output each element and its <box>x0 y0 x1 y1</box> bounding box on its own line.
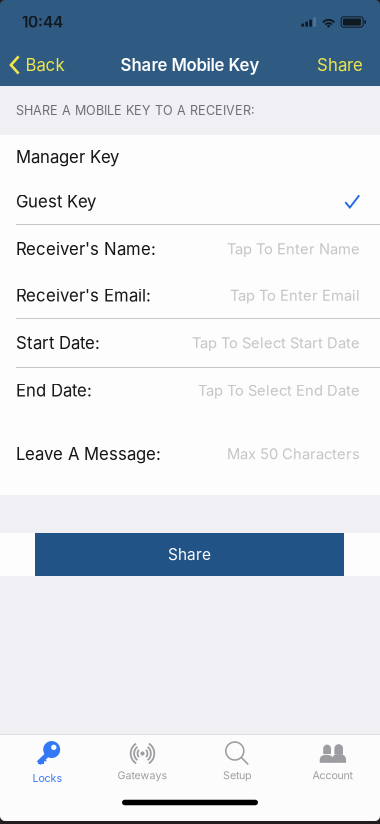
button[interactable]: Locks <box>0 735 95 784</box>
staticText: Manager Key <box>16 147 119 167</box>
button[interactable]: Manager Key <box>0 135 380 179</box>
staticText: Back <box>25 55 64 75</box>
staticText: Tap To Enter Name <box>227 240 360 258</box>
staticText: Share <box>168 545 211 564</box>
staticText: Locks <box>32 771 62 784</box>
staticText: Gateways <box>117 769 167 782</box>
staticText: Receiver's Name: <box>16 239 156 259</box>
staticText: End Date: <box>16 380 92 401</box>
button[interactable]: Guest Key <box>0 179 380 224</box>
button[interactable]: Receiver's Email: <box>0 273 380 318</box>
button[interactable]: Back <box>0 44 74 86</box>
button[interactable]: Share <box>0 533 380 576</box>
staticText: Tap To Select Start Date <box>192 334 360 352</box>
staticText: Start Date: <box>16 333 100 353</box>
staticText: 10:44 <box>22 13 63 31</box>
staticText: Receiver's Email: <box>16 285 151 306</box>
button[interactable]: Account <box>285 735 380 784</box>
button[interactable]: Share <box>300 44 380 86</box>
staticText: Share Mobile Key <box>120 55 259 75</box>
button[interactable]: Receiver's Name: <box>0 225 380 273</box>
button[interactable]: Leave A Message: <box>0 413 380 495</box>
button[interactable]: Start Date: <box>0 319 380 367</box>
staticText: Tap To Select End Date <box>198 382 360 399</box>
staticText: Share <box>317 55 363 75</box>
staticText: Setup <box>223 769 252 782</box>
staticText: Tap To Enter Email <box>230 287 360 304</box>
button[interactable]: Setup <box>190 735 285 784</box>
staticText: Leave A Message: <box>16 444 161 464</box>
staticText: Guest Key <box>16 191 96 212</box>
button[interactable]: End Date: <box>0 368 380 413</box>
staticText: Max 50 Characters <box>227 445 360 463</box>
staticText: Account <box>312 769 352 782</box>
staticText: SHARE A MOBILE KEY TO A RECEIVER: <box>16 103 255 118</box>
button[interactable]: Gateways <box>95 735 190 784</box>
